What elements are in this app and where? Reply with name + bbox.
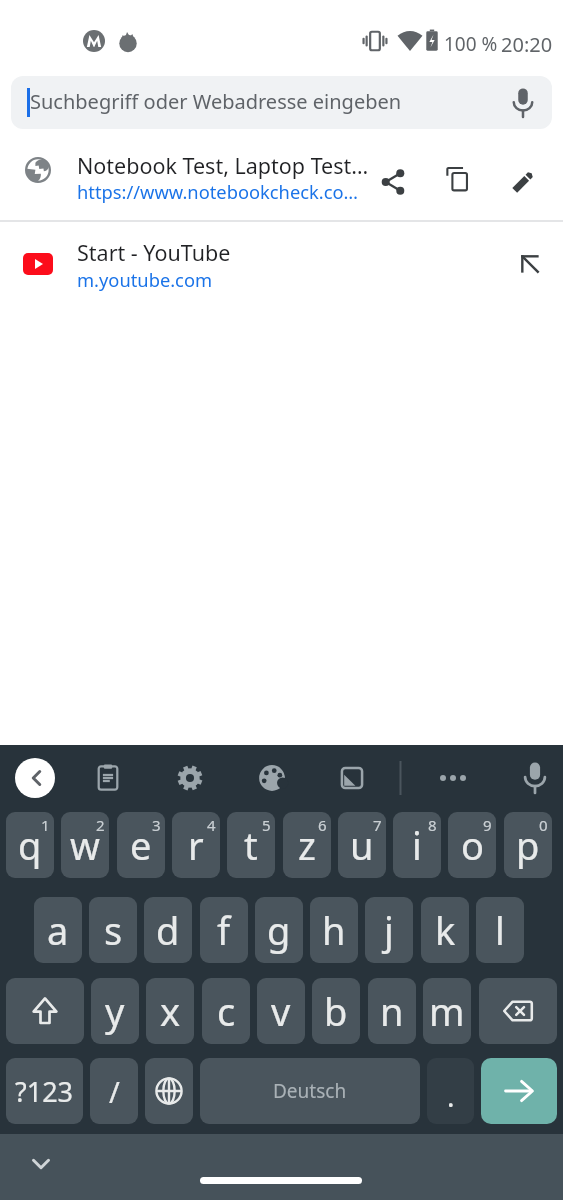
button[interactable] [508,242,552,286]
staticText: n [380,985,404,1037]
staticText: e [130,819,152,871]
staticText: y [105,985,125,1037]
button[interactable]: d [144,897,192,963]
button[interactable]: q [6,812,54,878]
staticText: a [47,904,69,956]
staticText: 6 [318,815,327,835]
button[interactable] [86,756,130,800]
staticText: i [412,819,422,871]
staticText: j [384,904,394,956]
button[interactable]: b [312,978,360,1044]
staticText: u [350,819,374,871]
staticText: k [435,904,456,956]
staticText: https://www.notebookcheck.co… [77,179,359,204]
button[interactable] [431,756,475,800]
button[interactable]: z [283,812,331,878]
staticText: / [109,1072,120,1111]
button[interactable]: t [227,812,275,878]
staticText: 5 [262,815,271,835]
button[interactable]: m [423,978,471,1044]
staticText: q [18,819,42,871]
button[interactable]: Start - YouTube [0,222,563,302]
staticText: Suchbegriff oder Webadresse eingeben [30,88,402,115]
button[interactable]: p [504,812,552,878]
button[interactable] [250,756,294,800]
staticText: 0 [539,815,548,835]
staticText: Deutsch [273,1078,347,1104]
staticText: r [188,819,204,871]
button[interactable] [19,1142,63,1186]
button[interactable]: y [91,978,139,1044]
button[interactable]: Deutsch [200,1058,420,1124]
staticText: 8 [428,815,437,835]
button[interactable]: . [427,1058,474,1124]
button[interactable] [436,160,480,204]
staticText: t [244,819,258,871]
staticText: 3 [152,815,161,835]
button[interactable]: k [421,897,469,963]
button[interactable]: s [89,897,137,963]
button[interactable] [15,758,55,798]
staticText: ?123 [15,1073,74,1110]
staticText: c [217,985,236,1037]
button[interactable] [513,756,557,800]
staticText: Start - YouTube [77,238,231,267]
button[interactable]: r [172,812,220,878]
button[interactable] [481,1058,557,1124]
button[interactable]: ?123 [6,1058,83,1124]
button[interactable]: x [146,978,194,1044]
button[interactable] [330,756,374,800]
staticText: s [104,904,123,956]
staticText: f [217,904,231,956]
button[interactable]: v [257,978,305,1044]
staticText: o [461,819,484,871]
button[interactable]: f [200,897,248,963]
staticText: 1 [41,815,50,835]
staticText: w [70,819,100,871]
button[interactable]: Notebook Test, Laptop Test… [0,143,563,220]
staticText: g [267,904,291,956]
staticText: Notebook Test, Laptop Test… [77,151,369,180]
staticText: 7 [373,815,382,835]
button[interactable]: o [448,812,496,878]
staticText: p [516,819,540,871]
button[interactable] [371,160,415,204]
staticText: m.youtube.com [77,267,213,292]
button[interactable] [145,1058,193,1124]
staticText: 4 [207,815,216,835]
staticText: 9 [483,815,492,835]
button[interactable]: / [90,1058,138,1124]
staticText: 20:20 [501,31,553,58]
button[interactable] [501,81,545,125]
staticText: . [447,1077,455,1115]
staticText: v [271,985,291,1037]
button[interactable]: e [117,812,165,878]
button[interactable] [168,756,212,800]
button[interactable]: i [393,812,441,878]
staticText: b [324,985,348,1037]
button[interactable] [6,978,84,1044]
button[interactable]: g [255,897,303,963]
button[interactable]: Suchbegriff oder Webadresse eingeben [11,76,552,129]
staticText: m [429,985,465,1037]
staticText: 2 [96,815,105,835]
button[interactable]: c [202,978,250,1044]
staticText: 100 % [444,31,498,57]
staticText: d [156,904,180,956]
button[interactable]: j [365,897,413,963]
button[interactable]: h [310,897,358,963]
staticText: x [160,985,181,1037]
button[interactable] [501,160,545,204]
button[interactable]: n [368,978,416,1044]
button[interactable]: l [476,897,524,963]
button[interactable] [479,978,557,1044]
button[interactable]: a [34,897,82,963]
staticText: h [322,904,346,956]
button[interactable]: u [338,812,386,878]
button[interactable]: w [61,812,109,878]
staticText: z [298,819,316,871]
staticText: l [495,904,505,956]
